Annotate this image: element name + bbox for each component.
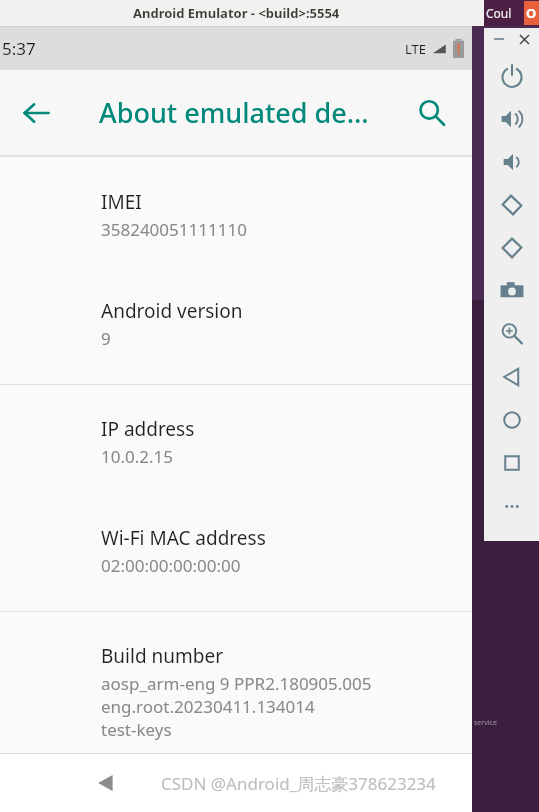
staticText: 10.0.2.15 bbox=[101, 445, 174, 468]
button[interactable]: Rotate left bbox=[484, 183, 539, 226]
button[interactable]: Rotate right bbox=[484, 226, 539, 269]
button[interactable]: More bbox=[484, 484, 539, 527]
button[interactable]: Home bbox=[484, 398, 539, 441]
button[interactable]: Close bbox=[515, 30, 533, 48]
staticText: test-keys bbox=[101, 718, 172, 741]
staticText: O bbox=[526, 4, 537, 22]
button[interactable]: Build number bbox=[0, 631, 472, 753]
staticText: service bbox=[474, 718, 497, 728]
button[interactable]: Power bbox=[484, 54, 539, 97]
button[interactable]: IMEI bbox=[0, 177, 472, 253]
button[interactable]: Android version bbox=[0, 286, 472, 362]
button[interactable]: Screenshot bbox=[484, 269, 539, 312]
staticText: Build number bbox=[101, 643, 224, 669]
button[interactable]: Overview bbox=[484, 441, 539, 484]
button[interactable]: Back bbox=[484, 355, 539, 398]
staticText: 358240051111110 bbox=[101, 218, 247, 241]
staticText: LTE bbox=[405, 40, 427, 58]
button[interactable]: Search bbox=[406, 87, 458, 139]
staticText: IMEI bbox=[101, 189, 142, 215]
button[interactable]: Volume up bbox=[484, 97, 539, 140]
staticText: 02:00:00:00:00:00 bbox=[101, 554, 241, 577]
staticText: IP address bbox=[101, 416, 195, 442]
button[interactable]: Volume down bbox=[484, 140, 539, 183]
button[interactable]: IP address bbox=[0, 404, 472, 480]
staticText: Wi-Fi MAC address bbox=[101, 525, 266, 551]
button[interactable]: Wi-Fi MAC address bbox=[0, 513, 472, 589]
staticText: eng.root.20230411.134014 bbox=[101, 695, 315, 718]
staticText: 9 bbox=[101, 327, 111, 350]
button[interactable]: Zoom bbox=[484, 312, 539, 355]
staticText: Coul bbox=[486, 5, 512, 21]
staticText: Android Emulator - <build>:5554 bbox=[133, 4, 340, 22]
staticText: About emulated de… bbox=[99, 94, 369, 131]
staticText: aosp_arm-eng 9 PPR2.180905.005 bbox=[101, 672, 372, 695]
staticText: 5:37 bbox=[2, 37, 36, 60]
button[interactable]: Back bbox=[82, 759, 130, 807]
button[interactable]: Back bbox=[10, 87, 62, 139]
staticText: Android version bbox=[101, 298, 243, 324]
staticText: CSDN @Android_周志豪378623234 bbox=[161, 772, 436, 795]
button[interactable]: Minimize bbox=[490, 30, 508, 48]
